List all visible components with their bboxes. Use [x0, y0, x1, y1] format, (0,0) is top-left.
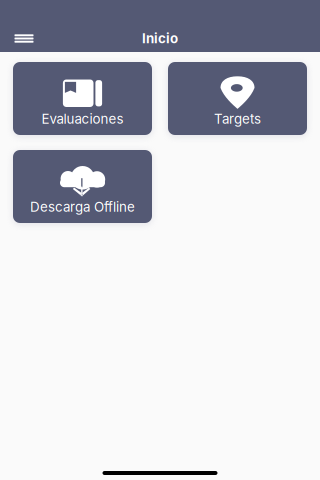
- staticText: Inicio: [142, 30, 178, 46]
- staticText: Descarga Offline: [30, 199, 135, 215]
- button[interactable]: Menu: [7, 25, 41, 52]
- button[interactable]: Evaluaciones: [13, 62, 152, 135]
- staticText: Targets: [214, 111, 261, 127]
- button[interactable]: Targets: [168, 62, 307, 135]
- button[interactable]: Descarga Offline: [13, 150, 152, 223]
- staticText: Evaluaciones: [41, 111, 123, 127]
